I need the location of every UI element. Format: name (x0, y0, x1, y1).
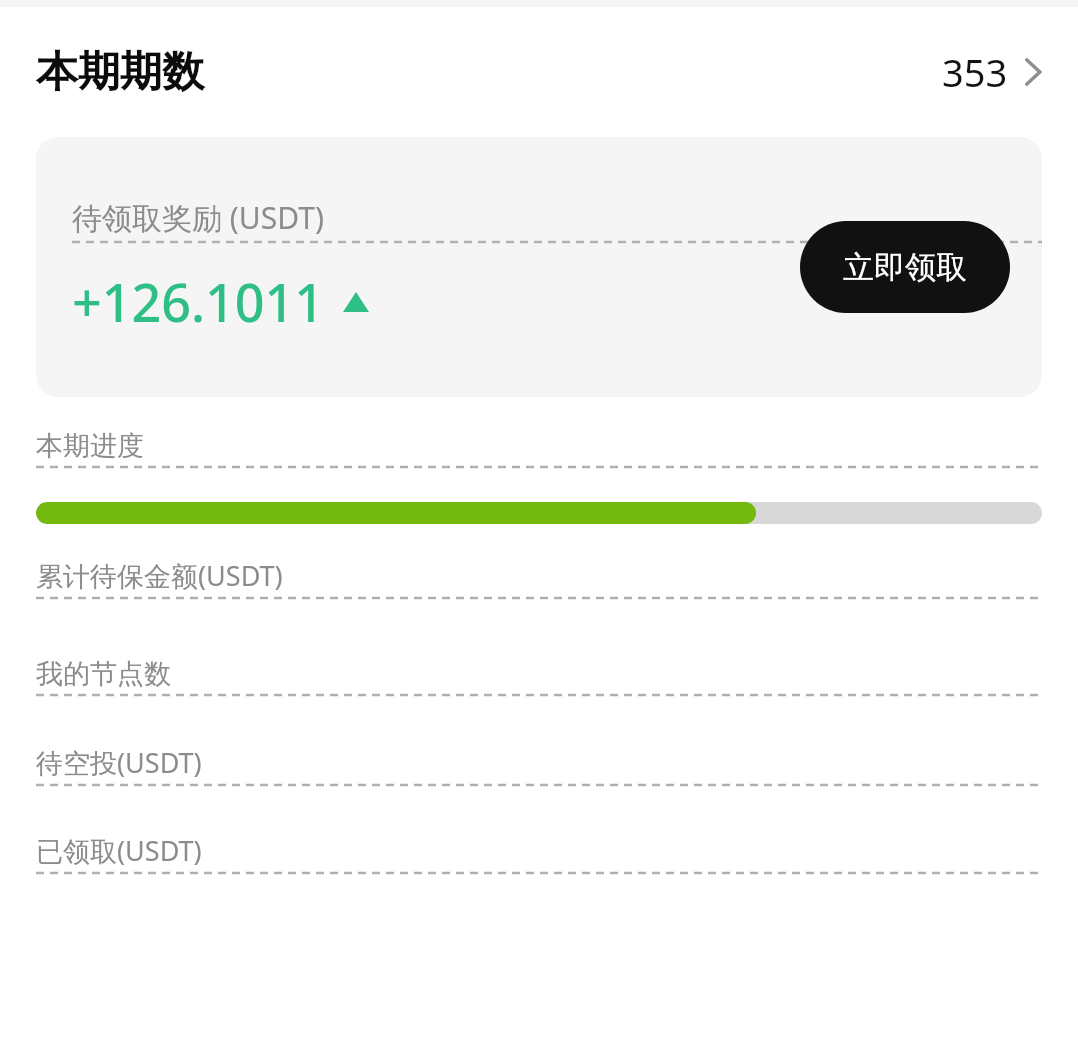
staticText: 我的节点数 (36, 657, 171, 691)
other: Open period details (1024, 56, 1042, 88)
staticText: 353 (942, 46, 1008, 98)
button[interactable]: 立即领取 (800, 221, 1010, 313)
button[interactable]: 已领取(USDT) (0, 810, 1078, 898)
staticText: 本期期数 (36, 46, 204, 99)
staticText: 待空投(USDT) (36, 744, 202, 781)
staticText: 本期进度 (36, 429, 144, 463)
staticText: 已领取(USDT) (36, 832, 202, 869)
staticText: 待领取奖励 (USDT) (72, 197, 324, 238)
button[interactable]: 累计待保金额(USDT) (0, 524, 1078, 634)
button[interactable]: 我的节点数 (0, 634, 1078, 722)
button[interactable]: 本期期数 (0, 7, 1078, 137)
staticText: +126.1011 (72, 266, 325, 337)
button[interactable]: 待空投(USDT) (0, 722, 1078, 810)
staticText: 累计待保金额(USDT) (36, 557, 283, 594)
staticText: 立即领取 (843, 248, 967, 287)
